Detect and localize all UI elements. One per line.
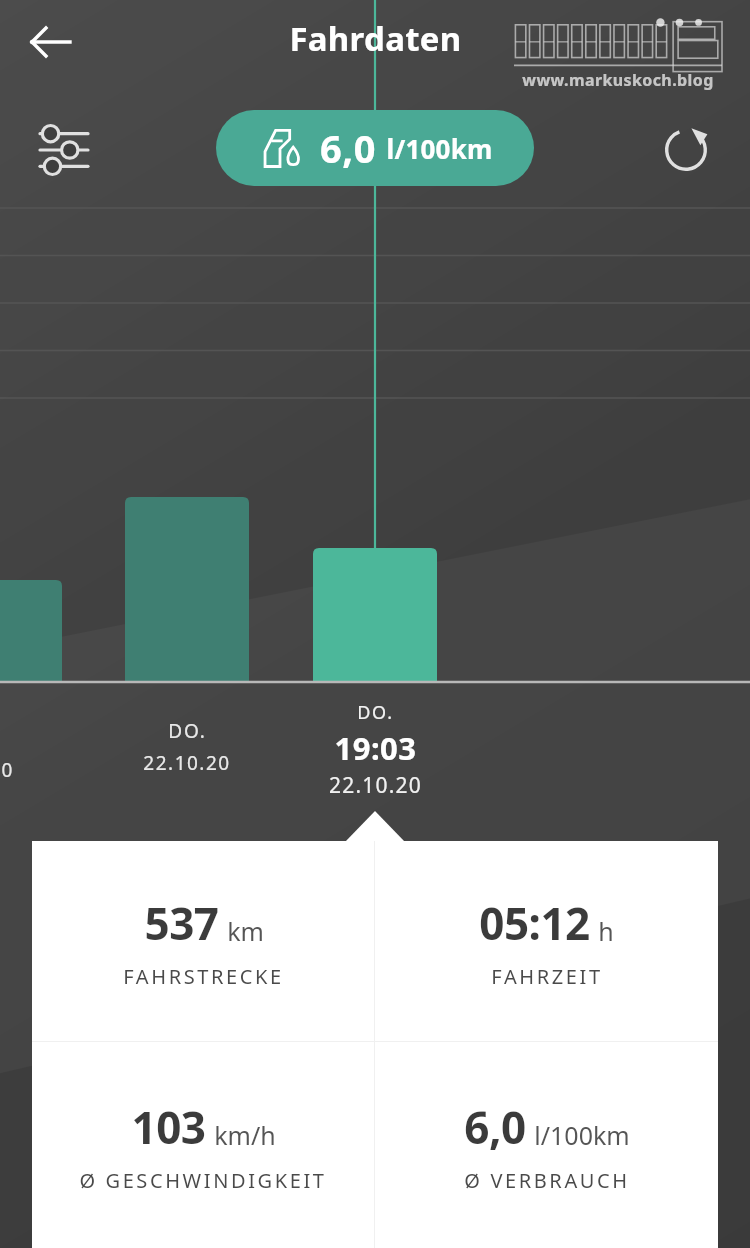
staticText: DO. xyxy=(168,718,207,744)
button[interactable]: 103 xyxy=(32,1042,374,1248)
staticText: 103 xyxy=(131,1097,206,1157)
button[interactable]: 6,0 xyxy=(216,110,534,186)
button[interactable]: 537 xyxy=(32,841,374,1041)
staticText: Fahrdaten xyxy=(289,16,462,61)
button[interactable]: 6,0 xyxy=(375,1042,718,1248)
staticText: h xyxy=(598,914,614,948)
staticText: 22.10.20 xyxy=(329,771,422,800)
staticText: 6,0 xyxy=(320,122,376,174)
button[interactable]: 05:12 xyxy=(375,841,718,1041)
staticText: FAHRSTRECKE xyxy=(123,963,284,990)
staticText: 22.10.20 xyxy=(143,750,231,776)
staticText: Ø VERBRAUCH xyxy=(464,1167,630,1194)
staticText: Ø GESCHWINDIGKEIT xyxy=(79,1167,327,1194)
button[interactable]: Back xyxy=(14,6,86,78)
staticText: 537 xyxy=(144,893,219,953)
staticText: www.markuskoch.blog xyxy=(522,69,714,91)
staticText: km/h xyxy=(214,1118,276,1152)
staticText: l/100km xyxy=(534,1118,630,1152)
staticText: km xyxy=(227,914,264,948)
button[interactable]: Filter xyxy=(22,108,106,192)
staticText: 6,0 xyxy=(464,1097,526,1157)
button[interactable]: Refresh xyxy=(644,108,728,192)
staticText: FAHRZEIT xyxy=(491,963,603,990)
staticText: 05:12 xyxy=(479,893,590,953)
staticText: DO. xyxy=(357,700,394,725)
staticText: l/100km xyxy=(386,131,493,166)
staticText: 0.20 xyxy=(0,757,14,783)
staticText: 19:03 xyxy=(334,727,417,769)
